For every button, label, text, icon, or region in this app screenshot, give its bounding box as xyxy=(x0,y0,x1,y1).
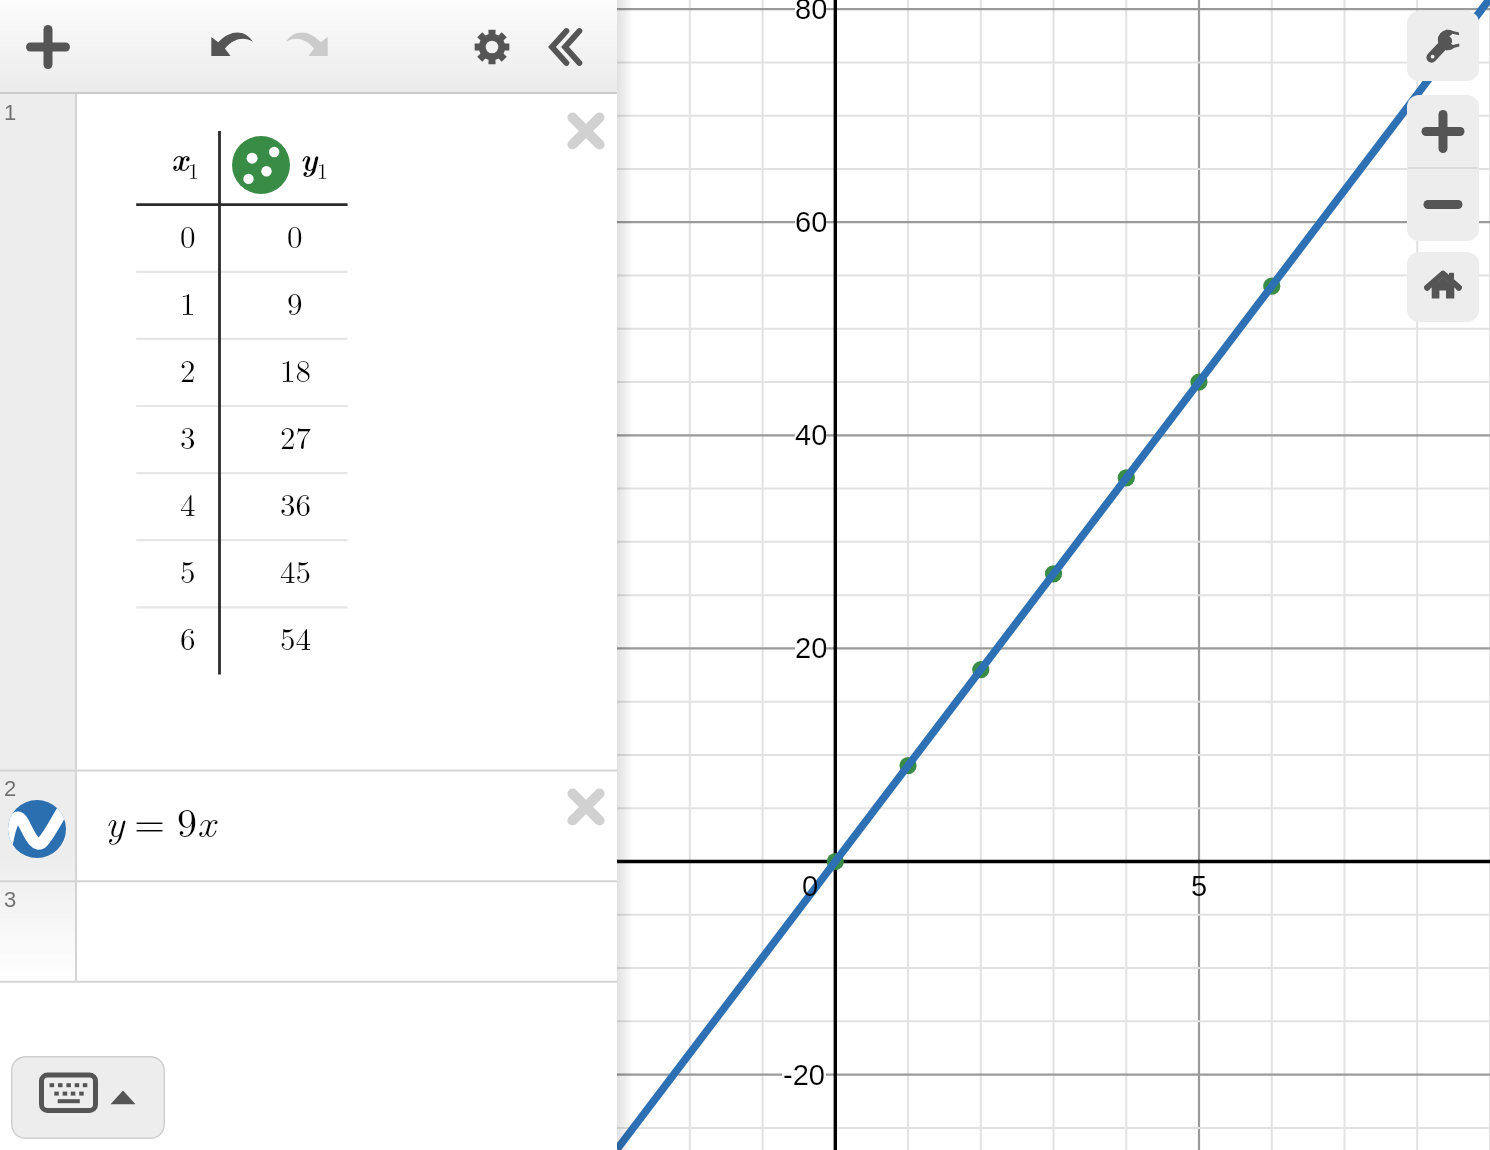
staticText: 9 xyxy=(177,792,197,849)
staticText: 0 xyxy=(802,870,819,900)
button[interactable]: Zoom out xyxy=(1407,168,1479,241)
staticText: 1 xyxy=(188,154,200,185)
staticText: y xyxy=(300,134,318,179)
staticText: 2 xyxy=(4,776,17,801)
button[interactable]: Default viewport xyxy=(1407,252,1479,322)
staticText: = xyxy=(134,792,166,849)
staticText: 80 xyxy=(795,0,826,25)
staticText: x xyxy=(197,792,216,849)
staticText: 1 xyxy=(317,154,329,185)
button[interactable]: Line style xyxy=(8,800,66,858)
button[interactable]: Add expression xyxy=(14,13,82,81)
button[interactable]: Point style xyxy=(232,136,290,194)
staticText: 0 xyxy=(287,213,303,257)
staticText: 5 xyxy=(1191,870,1208,900)
button[interactable]: Delete expression 1 xyxy=(553,98,619,164)
staticText: y xyxy=(105,792,125,849)
staticText: 1 xyxy=(180,280,196,324)
button[interactable]: Undo xyxy=(197,11,265,79)
button[interactable]: Graph settings xyxy=(1407,11,1479,81)
button[interactable]: Delete expression 2 xyxy=(553,774,619,840)
staticText: 9 xyxy=(287,280,303,324)
staticText: 18 xyxy=(280,347,311,391)
staticText: 54 xyxy=(280,615,311,659)
staticText: 3 xyxy=(180,414,196,458)
staticText: -20 xyxy=(783,1059,825,1091)
staticText: 45 xyxy=(280,548,311,592)
staticText: 20 xyxy=(795,632,826,664)
staticText: 1 xyxy=(4,100,17,125)
staticText: 40 xyxy=(795,419,826,451)
staticText: 6 xyxy=(180,615,196,659)
button[interactable]: Settings xyxy=(458,13,526,81)
button[interactable]: Zoom in xyxy=(1407,95,1479,168)
staticText: 60 xyxy=(795,206,826,238)
staticText: x xyxy=(171,134,189,179)
button[interactable]: Redo xyxy=(274,11,342,79)
staticText: 4 xyxy=(180,481,196,525)
staticText: 36 xyxy=(280,481,311,525)
staticText: 2 xyxy=(180,347,196,391)
button[interactable]: Collapse panel xyxy=(534,13,602,81)
staticText: 0 xyxy=(180,213,196,257)
staticText: 27 xyxy=(280,414,311,458)
staticText: 5 xyxy=(180,548,196,592)
staticText: 3 xyxy=(4,887,17,912)
button[interactable]: Show keyboard xyxy=(11,1056,165,1139)
